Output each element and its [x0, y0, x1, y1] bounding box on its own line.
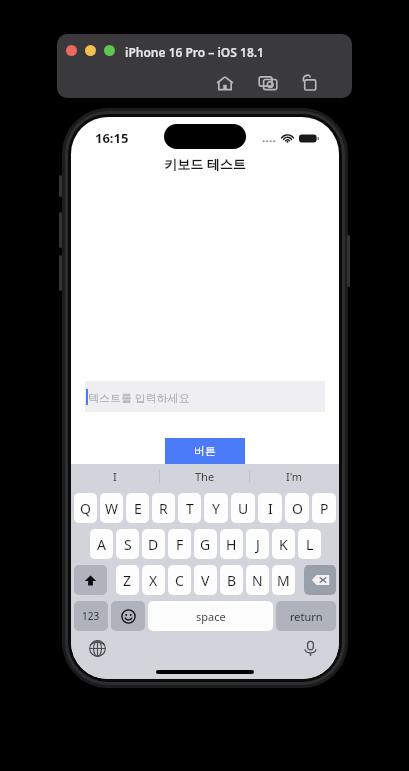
staticText: Y: [212, 499, 220, 518]
staticText: F: [176, 535, 184, 554]
staticText: The: [195, 469, 215, 484]
staticText: P: [320, 499, 329, 518]
button[interactable]: 123: [74, 601, 108, 631]
staticText: L: [306, 535, 314, 554]
button[interactable]: I: [71, 464, 159, 489]
button[interactable]: F: [168, 529, 191, 559]
staticText: A: [97, 535, 106, 554]
button[interactable]: Backspace: [304, 565, 336, 595]
button[interactable]: D: [142, 529, 165, 559]
staticText: 123: [82, 609, 100, 623]
staticText: W: [105, 499, 119, 518]
staticText: I: [113, 469, 117, 484]
staticText: N: [252, 571, 263, 590]
button[interactable]: Screenshot: [257, 72, 279, 94]
staticText: S: [124, 535, 132, 554]
staticText: iPhone 16 Pro – iOS 18.1: [125, 44, 264, 60]
staticText: I: [268, 499, 273, 518]
staticText: return: [290, 609, 323, 624]
button[interactable]: L: [298, 529, 321, 559]
button[interactable]: space: [148, 601, 273, 631]
button[interactable]: Switch keyboard: [89, 640, 106, 657]
button[interactable]: Home: [214, 72, 236, 94]
button[interactable]: K: [272, 529, 295, 559]
staticText: 버튼: [194, 444, 216, 458]
staticText: M: [277, 571, 290, 590]
button[interactable]: V: [194, 565, 217, 595]
button[interactable]: J: [246, 529, 269, 559]
staticText: 16:15: [95, 129, 129, 147]
button[interactable]: X: [142, 565, 165, 595]
staticText: X: [149, 571, 158, 590]
staticText: K: [279, 535, 288, 554]
staticText: D: [148, 535, 159, 554]
staticText: C: [175, 571, 184, 590]
button[interactable]: Z: [116, 565, 139, 595]
staticText: I'm: [286, 469, 303, 484]
button[interactable]: I: [258, 493, 282, 523]
button[interactable]: M: [272, 565, 295, 595]
staticText: U: [238, 499, 249, 518]
button[interactable]: Dictation: [302, 640, 319, 657]
staticText: Z: [123, 571, 132, 590]
button[interactable]: Shift: [74, 565, 107, 595]
button[interactable]: 텍스트를 입력하세요: [85, 381, 325, 412]
button[interactable]: B: [220, 565, 243, 595]
button[interactable]: E: [126, 493, 149, 523]
staticText: 텍스트를 입력하세요: [88, 390, 190, 405]
button[interactable]: P: [312, 493, 336, 523]
button[interactable]: Q: [74, 493, 97, 523]
button[interactable]: S: [116, 529, 139, 559]
button[interactable]: T: [178, 493, 201, 523]
staticText: G: [200, 535, 211, 554]
staticText: B: [227, 571, 237, 590]
button[interactable]: C: [168, 565, 191, 595]
staticText: V: [201, 571, 210, 590]
button[interactable]: R: [152, 493, 175, 523]
staticText: J: [256, 535, 260, 554]
staticText: R: [159, 499, 168, 518]
staticText: H: [226, 535, 237, 554]
button[interactable]: H: [220, 529, 243, 559]
button[interactable]: G: [194, 529, 217, 559]
staticText: O: [292, 499, 303, 518]
button[interactable]: N: [246, 565, 269, 595]
button[interactable]: W: [100, 493, 123, 523]
button[interactable]: U: [231, 493, 255, 523]
staticText: E: [134, 499, 142, 518]
staticText: 키보드 테스트: [71, 155, 339, 173]
button[interactable]: Y: [204, 493, 228, 523]
button[interactable]: Emoji: [111, 601, 145, 631]
button[interactable]: return: [276, 601, 336, 631]
button[interactable]: A: [90, 529, 113, 559]
staticText: Q: [80, 499, 91, 518]
button[interactable]: O: [285, 493, 309, 523]
button[interactable]: 버튼: [165, 438, 245, 464]
button[interactable]: The: [160, 464, 249, 489]
staticText: T: [186, 499, 194, 518]
button[interactable]: Rotate: [299, 72, 321, 94]
button[interactable]: I'm: [250, 464, 339, 489]
staticText: space: [196, 609, 226, 624]
